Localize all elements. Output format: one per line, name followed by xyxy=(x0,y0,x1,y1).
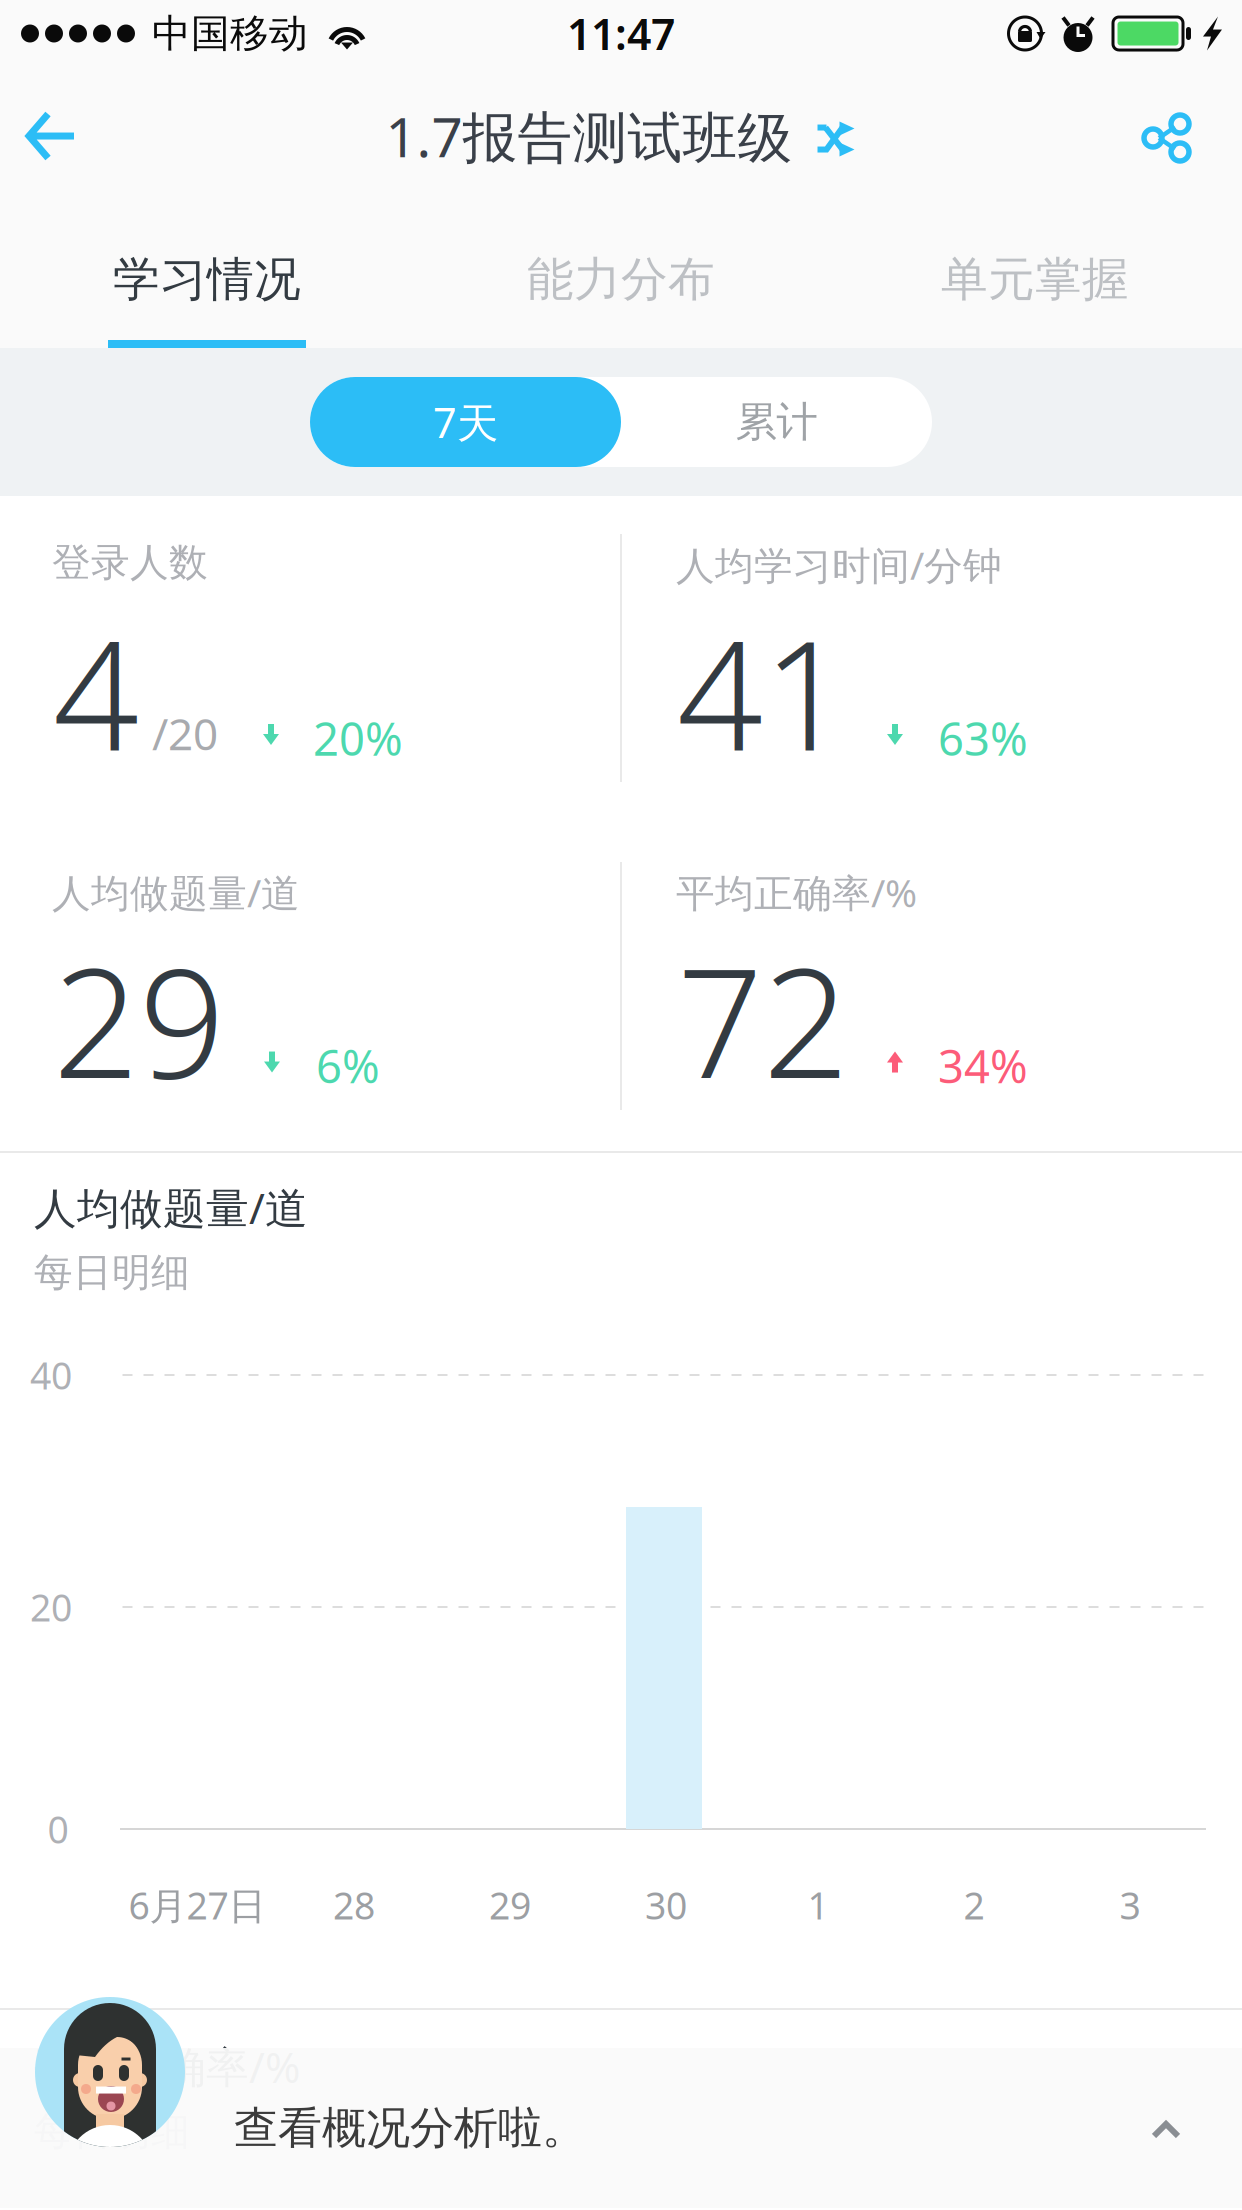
staticText: 累计 xyxy=(735,397,817,447)
staticText: 1 xyxy=(807,1880,828,1930)
staticText: 6% xyxy=(316,1035,380,1096)
staticText: 34% xyxy=(938,1035,1028,1096)
staticText: 学习情况 xyxy=(113,251,301,308)
staticText: 人均学习时间/分钟 xyxy=(676,539,1002,590)
staticText: 3 xyxy=(1119,1880,1140,1930)
staticText: 72 xyxy=(677,919,849,1120)
staticText: 20% xyxy=(313,708,403,768)
button[interactable]: 单元掌握 xyxy=(828,192,1242,348)
staticText: 平均正确率/% xyxy=(676,866,917,918)
button[interactable]: Back xyxy=(0,85,98,187)
staticText: 11:47 xyxy=(567,5,675,62)
staticText: /20 xyxy=(152,704,218,762)
staticText: 29 xyxy=(489,1880,531,1930)
staticText: 4 xyxy=(53,592,139,792)
staticText: 登录人数 xyxy=(52,539,208,586)
button[interactable]: Share xyxy=(1119,83,1242,189)
staticText: 41 xyxy=(677,592,849,792)
staticText: 每日明细 xyxy=(34,1249,190,1296)
staticText: 28 xyxy=(333,1880,375,1930)
button[interactable]: 7天 xyxy=(310,377,621,467)
button[interactable]: 查看概况分析啦。 xyxy=(0,1997,1242,2208)
staticText: 63% xyxy=(938,708,1028,768)
staticText: 查看概况分析啦。 xyxy=(234,2101,586,2155)
staticText: 平均正确率/% xyxy=(34,2038,300,2095)
staticText: 29 xyxy=(53,919,225,1120)
staticText: 40 xyxy=(30,1350,72,1400)
staticText: 每日明细 xyxy=(34,2108,190,2155)
button[interactable]: 能力分布 xyxy=(414,192,828,348)
staticText: 人均做题量/道 xyxy=(52,866,300,918)
staticText: 单元掌握 xyxy=(941,251,1129,308)
staticText: 中国移动 xyxy=(152,10,308,57)
staticText: 2 xyxy=(963,1880,984,1930)
staticText: 6月27日 xyxy=(128,1880,265,1930)
button[interactable]: 1.7报告测试班级 xyxy=(375,84,866,188)
staticText: 20 xyxy=(30,1582,72,1632)
staticText: 1.7报告测试班级 xyxy=(385,100,792,172)
staticText: 0 xyxy=(47,1804,68,1854)
staticText: 30 xyxy=(645,1880,687,1930)
button[interactable]: 学习情况 xyxy=(0,192,414,348)
staticText: 7天 xyxy=(433,395,498,449)
button[interactable]: 累计 xyxy=(621,377,932,467)
staticText: 能力分布 xyxy=(527,251,715,308)
staticText: 人均做题量/道 xyxy=(34,1179,308,1236)
